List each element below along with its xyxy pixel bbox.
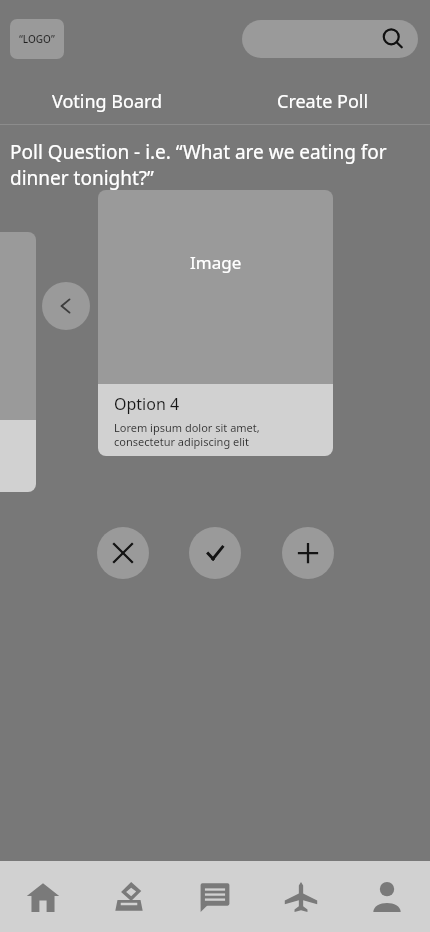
staticText: Voting Board [52,89,163,114]
button[interactable]: Image [98,190,333,456]
button[interactable]: Messages [172,861,258,932]
button[interactable]: Reject [97,527,149,579]
button[interactable]: “LOGO” [10,19,64,59]
button[interactable]: Home [0,861,86,932]
button[interactable]: Accept [189,527,241,579]
button[interactable]: Travel [258,861,344,932]
button[interactable]: Profile [344,861,430,932]
button[interactable]: Create Poll [215,78,430,124]
button[interactable] [0,232,36,492]
button[interactable]: Vote [86,861,172,932]
staticText: Image [190,251,242,274]
staticText: Lorem ipsum dolor sit amet, consectetur … [114,420,321,449]
staticText: “LOGO” [19,32,55,46]
button[interactable]: Search [242,20,418,58]
staticText: Create Poll [277,89,369,114]
staticText: Poll Question - i.e. “What are we eating… [10,139,406,190]
button[interactable]: Previous option [42,282,90,330]
button[interactable]: Voting Board [0,78,215,124]
button[interactable]: Add option [282,527,334,579]
staticText: Option 4 [114,393,180,415]
